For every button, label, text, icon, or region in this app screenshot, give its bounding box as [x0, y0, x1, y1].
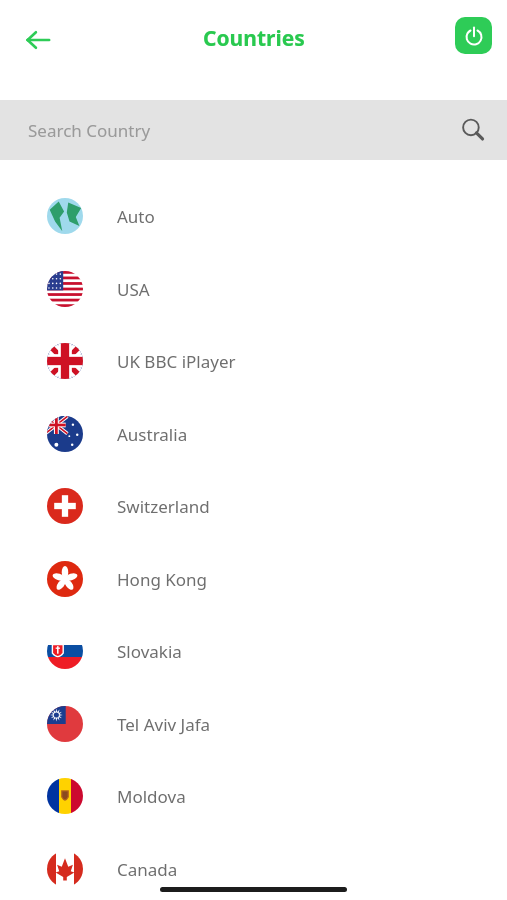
staticText: Countries	[203, 24, 305, 53]
staticText: Switzerland	[117, 495, 210, 518]
staticText: UK BBC iPlayer	[117, 350, 236, 373]
staticText: Search Country	[28, 119, 151, 142]
staticText: Slovakia	[117, 640, 182, 663]
staticText: Canada	[117, 858, 178, 881]
staticText: Moldova	[117, 785, 186, 808]
staticText: Auto	[117, 205, 155, 228]
button[interactable]: Australia	[0, 398, 507, 470]
button[interactable]: Slovakia	[0, 615, 507, 687]
button[interactable]: Hong Kong	[0, 543, 507, 615]
button[interactable]: Power	[455, 17, 492, 54]
button[interactable]: Back	[16, 18, 60, 62]
button[interactable]: Moldova	[0, 760, 507, 832]
staticText: Australia	[117, 423, 188, 446]
button[interactable]: Search	[453, 110, 493, 150]
staticText: USA	[117, 278, 150, 301]
button[interactable]: Switzerland	[0, 470, 507, 542]
button[interactable]: USA	[0, 253, 507, 325]
button[interactable]: Search Country	[0, 100, 507, 160]
staticText: Tel Aviv Jafa	[117, 713, 211, 736]
button[interactable]: Canada	[0, 833, 507, 900]
button[interactable]: Auto	[0, 180, 507, 252]
button[interactable]: Tel Aviv Jafa	[0, 688, 507, 760]
staticText: Hong Kong	[117, 568, 208, 591]
button[interactable]: UK BBC iPlayer	[0, 325, 507, 397]
